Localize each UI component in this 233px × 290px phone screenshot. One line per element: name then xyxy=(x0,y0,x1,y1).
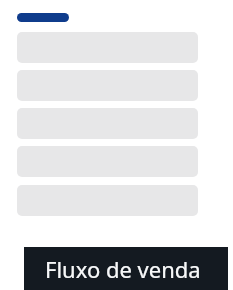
staticText: Fluxo de venda xyxy=(45,254,201,284)
button[interactable]: Fluxo de venda xyxy=(24,247,228,290)
button[interactable]: Section title xyxy=(17,13,69,22)
